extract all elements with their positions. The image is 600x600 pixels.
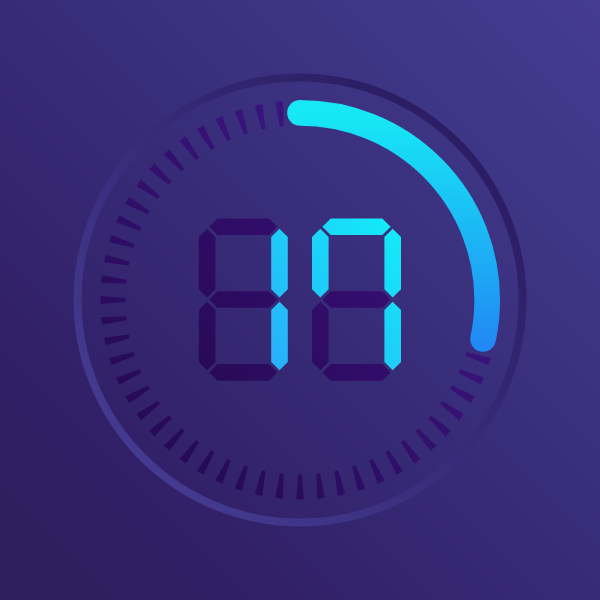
button[interactable]: Start or pause timer: [78, 78, 523, 523]
